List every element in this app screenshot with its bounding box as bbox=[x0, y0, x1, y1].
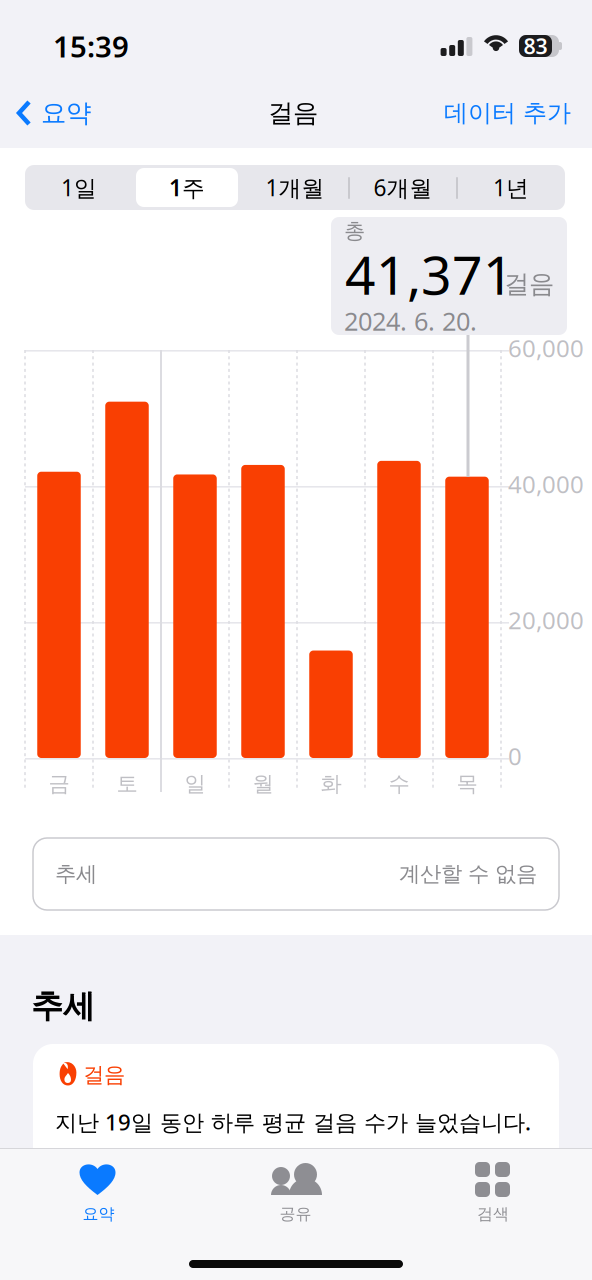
staticText: 걸음 bbox=[83, 1062, 125, 1088]
staticText: 지난 19일 동안 하루 평균 걸음 수가 늘었습니다. bbox=[55, 1107, 531, 1137]
staticText: 40,000 bbox=[508, 468, 584, 500]
button[interactable]: 1개월 bbox=[241, 165, 349, 210]
staticText: 1일 bbox=[61, 172, 97, 202]
staticText: 요약 bbox=[82, 1204, 114, 1224]
staticText: 추세 bbox=[31, 986, 95, 1026]
staticText: 0 bbox=[508, 740, 522, 772]
staticText: 공유 bbox=[279, 1204, 311, 1224]
staticText: 토 bbox=[116, 771, 137, 797]
staticText: 월 bbox=[252, 771, 273, 797]
staticText: 걸음 bbox=[504, 268, 554, 299]
staticText: 1개월 bbox=[265, 172, 324, 202]
staticText: 2024. 6. 20. bbox=[344, 304, 477, 338]
staticText: 15:39 bbox=[53, 26, 129, 65]
staticText: 60,000 bbox=[508, 332, 584, 364]
staticText: 화 bbox=[320, 771, 341, 797]
staticText: 83 bbox=[523, 32, 547, 60]
staticText: 20,000 bbox=[508, 604, 584, 636]
staticText: 총 bbox=[344, 218, 365, 244]
staticText: 1주 bbox=[169, 172, 205, 202]
staticText: 추세 bbox=[55, 861, 97, 887]
staticText: 6개월 bbox=[373, 172, 432, 202]
staticText: 걸음 bbox=[268, 97, 318, 128]
staticText: 계산할 수 없음 bbox=[399, 861, 537, 887]
button[interactable]: 추세 bbox=[33, 838, 559, 910]
staticText: 검색 bbox=[477, 1204, 509, 1224]
staticText: 1년 bbox=[493, 172, 529, 202]
button[interactable]: 1일 bbox=[25, 165, 133, 210]
button[interactable]: 데이터 추가 bbox=[421, 82, 571, 144]
staticText: 일 bbox=[184, 771, 205, 797]
staticText: 수 bbox=[388, 771, 409, 797]
staticText: 41,371 bbox=[345, 239, 514, 309]
button[interactable]: 공유 bbox=[197, 1150, 394, 1230]
staticText: 목 bbox=[456, 771, 477, 797]
button[interactable]: 6개월 bbox=[349, 165, 457, 210]
staticText: 금 bbox=[48, 771, 69, 797]
button[interactable]: 요약 bbox=[4, 82, 103, 144]
staticText: 데이터 추가 bbox=[444, 98, 571, 128]
staticText: 요약 bbox=[41, 97, 91, 128]
button[interactable]: 1년 bbox=[457, 165, 565, 210]
button[interactable]: 1주 bbox=[133, 165, 241, 210]
button[interactable]: 요약 bbox=[0, 1150, 197, 1230]
button[interactable]: 검색 bbox=[394, 1150, 592, 1230]
